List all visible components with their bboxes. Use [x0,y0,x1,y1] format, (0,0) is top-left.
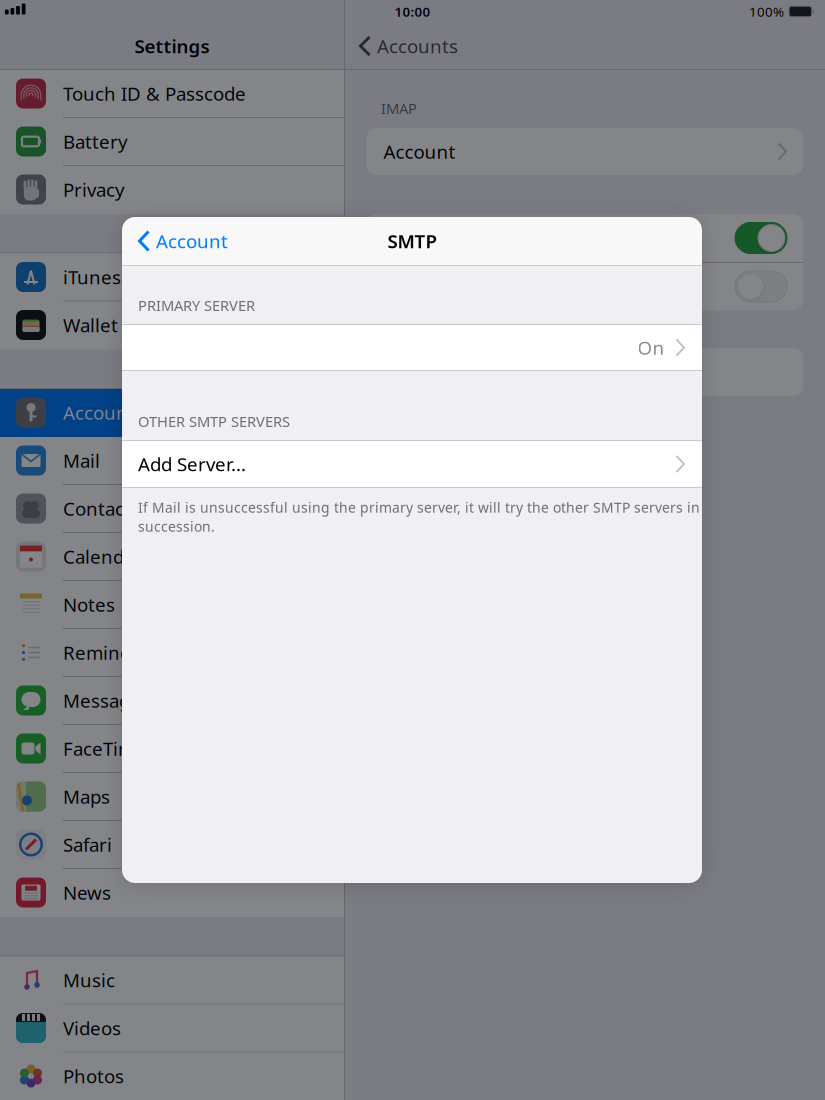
button[interactable]: Accounts [345,23,458,69]
staticText: Music [63,968,115,992]
button[interactable]: Safari [0,821,344,869]
button[interactable]: Reminders [0,629,344,677]
staticText: Add Server... [138,452,246,476]
staticText: OTHER SMTP SERVERS [138,411,290,431]
staticText: Reminders [63,640,159,665]
staticText: If Mail is unsuccessful using the primar… [138,498,700,536]
staticText: Account [383,139,455,164]
staticText: Accounts & Passwords [63,400,260,425]
staticText: Contacts [63,496,140,521]
staticText: IMAP [381,98,417,118]
button[interactable]: Battery [0,118,344,166]
staticText: Messages [63,688,150,713]
button[interactable]: Notes [0,581,344,629]
staticText: Photos [63,1064,124,1088]
button[interactable]: Account [122,217,228,265]
button[interactable]: Calendar [0,533,344,581]
button[interactable]: Music [0,956,344,1004]
staticText: SMTP [387,229,436,253]
staticText: Safari [63,832,112,857]
button[interactable]: Maps [0,773,344,821]
button[interactable]: Messages [0,677,344,725]
staticText: Privacy [63,177,125,202]
staticText: Touch ID & Passcode [63,81,246,106]
button[interactable]: Privacy [0,166,344,214]
button[interactable]: Accounts & Passwords [0,389,344,437]
button[interactable]: iTunes & App Store [0,253,344,301]
staticText: News [63,880,111,905]
button[interactable]: Wallet & Apple Pay [0,301,344,349]
staticText: Calendar [63,544,142,569]
button[interactable]: News [0,869,344,917]
staticText: PRIMARY SERVER [138,295,255,315]
button[interactable]: Videos [0,1004,344,1052]
staticText: Battery [63,129,128,154]
button[interactable]: Contacts [0,485,344,533]
staticText: Settings [134,34,209,58]
staticText: Wallet & Apple Pay [63,313,228,337]
button[interactable]: Account [366,128,803,175]
button[interactable]: Touch ID & Passcode [0,70,344,118]
button[interactable]: On [122,325,702,370]
staticText: Maps [63,784,110,809]
staticText: FaceTime [63,736,146,761]
staticText: 100% [749,3,784,20]
button[interactable]: Photos [0,1052,344,1100]
button[interactable]: Mail [0,437,344,485]
staticText: Account [156,229,228,253]
staticText: On [637,335,664,360]
staticText: Videos [63,1016,121,1040]
staticText: Accounts [377,34,458,58]
staticText: Mail [63,448,100,473]
button[interactable]: FaceTime [0,725,344,773]
staticText: iTunes & App Store [63,265,230,289]
staticText: Notes [63,592,115,617]
staticText: 10:00 [394,3,430,20]
button[interactable]: Add Server... [122,441,702,487]
